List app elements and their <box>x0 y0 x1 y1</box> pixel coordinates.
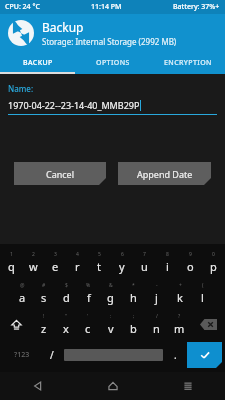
staticText: u <box>141 259 148 274</box>
button[interactable]: / <box>145 308 168 340</box>
button[interactable]: ; <box>122 308 145 340</box>
staticText: v <box>108 321 114 336</box>
staticText: + <box>179 282 182 289</box>
staticText: d <box>63 290 70 305</box>
staticText: Storage: Internal Storage (2992 MB) <box>42 36 177 47</box>
staticText: ?123 <box>14 350 30 360</box>
button[interactable]: + <box>168 278 191 308</box>
staticText: s <box>41 290 47 305</box>
staticText: Battery: 37%+ <box>173 2 220 12</box>
staticText: / <box>50 348 54 362</box>
staticText: 2 <box>32 251 35 258</box>
button[interactable]: ?123 <box>3 340 40 370</box>
button[interactable]: * <box>122 278 145 308</box>
staticText: 1 <box>10 251 13 258</box>
button[interactable]: : <box>99 308 122 340</box>
staticText: c <box>85 321 91 336</box>
button[interactable]: 0 <box>202 246 225 278</box>
staticText: p <box>210 259 217 274</box>
staticText: 1970-04-22--23-14-40_MMB29P <box>8 99 140 111</box>
staticText: & <box>109 282 113 289</box>
staticText: : <box>110 313 112 320</box>
button[interactable]: # <box>33 278 55 308</box>
staticText: ENCRYPTION <box>164 58 212 68</box>
button[interactable]: " <box>55 308 77 340</box>
staticText: i <box>166 259 169 274</box>
staticText: / <box>156 313 158 320</box>
button[interactable]: 8 <box>156 246 179 278</box>
staticText: q <box>8 259 15 274</box>
button[interactable]: ? <box>168 308 191 340</box>
button[interactable]: / <box>40 340 64 370</box>
staticText: z <box>41 321 47 336</box>
button[interactable]: ! <box>33 308 55 340</box>
button[interactable]: Recent apps <box>150 372 225 400</box>
button[interactable]: 3 <box>44 246 66 278</box>
button[interactable]: 1 <box>0 246 22 278</box>
staticText: % <box>86 282 91 289</box>
staticText: . <box>174 348 177 362</box>
staticText: b <box>130 321 137 336</box>
staticText: h <box>130 290 137 305</box>
button[interactable]: OPTIONS <box>75 52 150 74</box>
staticText: a <box>19 290 26 305</box>
staticText: 5 <box>98 251 101 258</box>
button[interactable]: ' <box>77 308 99 340</box>
button[interactable]: 5 <box>88 246 110 278</box>
button[interactable]: 6 <box>110 246 133 278</box>
staticText: m <box>174 321 185 336</box>
button[interactable]: Back <box>0 372 75 400</box>
staticText: Name: <box>8 83 34 94</box>
staticText: BACKUP <box>23 58 53 68</box>
staticText: ( <box>202 282 204 289</box>
button[interactable]: Cancel <box>14 162 106 185</box>
button[interactable]: Shift <box>0 308 33 340</box>
staticText: OPTIONS <box>96 58 130 68</box>
staticText: CPU: 24 °C <box>5 2 40 12</box>
staticText: l <box>201 290 204 305</box>
staticText: ! <box>43 313 45 320</box>
button[interactable]: Home <box>75 372 150 400</box>
staticText: @ <box>20 282 25 289</box>
staticText: w <box>29 259 38 274</box>
button[interactable]: Backspace <box>191 308 225 340</box>
staticText: 8 <box>166 251 169 258</box>
button[interactable]: & <box>99 278 122 308</box>
staticText: # <box>42 282 46 289</box>
staticText: ? <box>178 313 181 320</box>
staticText: e <box>52 259 59 274</box>
staticText: Backup <box>42 19 84 35</box>
button[interactable]: $ <box>55 278 77 308</box>
staticText: $ <box>65 282 68 289</box>
button[interactable]: % <box>77 278 99 308</box>
button[interactable]: 4 <box>66 246 88 278</box>
button[interactable]: 2 <box>22 246 44 278</box>
button[interactable]: BACKUP <box>0 52 75 74</box>
button[interactable]: @ <box>11 278 33 308</box>
staticText: t <box>97 259 101 274</box>
staticText: 6 <box>121 251 124 258</box>
staticText: Cancel <box>46 168 75 180</box>
button[interactable]: Done <box>187 342 222 368</box>
staticText: 7 <box>143 251 146 258</box>
button[interactable]: Append Date <box>118 162 211 185</box>
staticText: r <box>75 259 80 274</box>
staticText: 9 <box>189 251 192 258</box>
staticText: ; <box>133 313 135 320</box>
staticText: f <box>87 290 91 305</box>
button[interactable]: . <box>163 340 187 370</box>
staticText: 4 <box>76 251 79 258</box>
staticText: k <box>177 290 183 305</box>
button[interactable]: 9 <box>179 246 202 278</box>
staticText: y <box>119 259 125 274</box>
staticText: 11:14 PM <box>91 2 122 12</box>
staticText: o <box>187 259 194 274</box>
staticText: 0 <box>212 251 215 258</box>
button[interactable]: 7 <box>133 246 156 278</box>
button[interactable]: - <box>145 278 168 308</box>
staticText: n <box>153 321 160 336</box>
button[interactable]: ENCRYPTION <box>150 52 225 74</box>
staticText: g <box>107 290 114 305</box>
button[interactable]: ( <box>191 278 214 308</box>
